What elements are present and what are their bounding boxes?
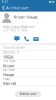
staticText: +47 982 11 443	[3, 29, 28, 32]
staticText: Hauge	[3, 72, 14, 77]
staticText: Last name	[3, 68, 15, 72]
staticText: Usage	[3, 77, 11, 81]
staticText: krister.hauge@mail.com	[3, 25, 34, 29]
button[interactable]: Email	[33, 36, 39, 42]
staticText: Archive user	[19, 92, 36, 96]
staticText: Internal	[3, 81, 16, 86]
staticText: First name	[3, 59, 16, 63]
staticText: Employee #	[3, 51, 19, 54]
staticText: Personal details	[3, 46, 25, 49]
staticText: Krister	[3, 63, 15, 68]
button[interactable]: Archive user	[15, 91, 41, 97]
button[interactable]: Call	[24, 36, 29, 42]
staticText: 10024	[3, 54, 13, 59]
staticText: 9:41	[1, 0, 8, 4]
staticText: Krister Hauge	[14, 14, 38, 19]
staticText: Archive user	[6, 5, 29, 10]
button[interactable]: Back	[1, 5, 5, 10]
button[interactable]: Message	[14, 36, 20, 42]
